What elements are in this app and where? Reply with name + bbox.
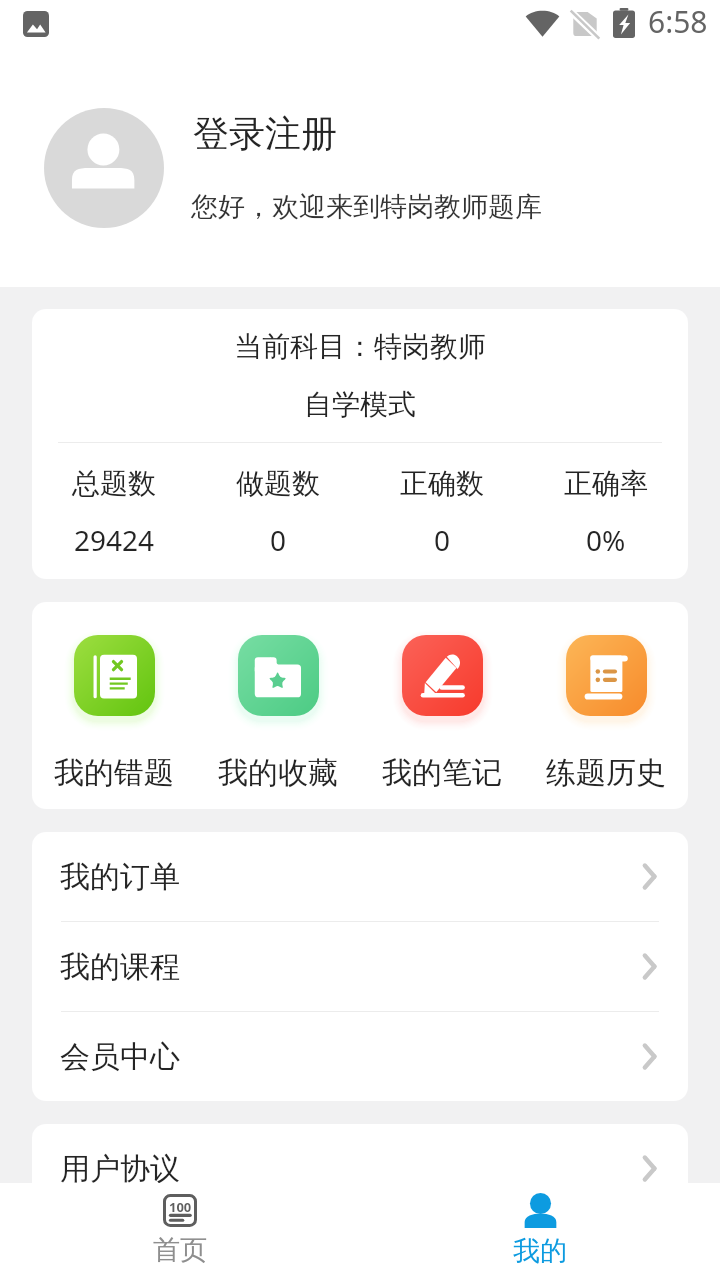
staticText: 100 — [169, 1198, 192, 1216]
staticText: 我的笔记 — [382, 754, 502, 792]
other: Screenshot — [23, 11, 49, 37]
staticText: 6:58 — [648, 1, 708, 42]
staticText: 我的收藏 — [218, 754, 338, 792]
staticText: 自学模式 — [32, 387, 688, 422]
staticText: 29424 — [74, 521, 155, 559]
staticText: 0 — [270, 521, 287, 559]
staticText: 会员中心 — [60, 1038, 180, 1076]
staticText: 正确率 — [564, 466, 648, 501]
staticText: 练题历史 — [546, 754, 666, 792]
button[interactable]: 我的错题 — [32, 602, 196, 809]
staticText: 用户协议 — [60, 1150, 180, 1188]
staticText: 正确数 — [400, 466, 484, 501]
button[interactable]: 登录注册 — [0, 56, 720, 287]
button[interactable]: 练题历史 — [524, 602, 688, 809]
button[interactable]: 我的课程 — [32, 922, 688, 1011]
staticText: 我的错题 — [54, 754, 174, 792]
staticText: 隐私政策 — [60, 1228, 180, 1266]
staticText: 首页 — [153, 1233, 207, 1267]
staticText: 0 — [434, 521, 451, 559]
staticText: 做题数 — [236, 466, 320, 501]
staticText: 登录注册 — [193, 111, 337, 156]
button[interactable]: 我的订单 — [32, 832, 688, 921]
button[interactable]: 会员中心 — [32, 1012, 688, 1101]
button[interactable]: 我的笔记 — [360, 602, 524, 809]
staticText: 我的订单 — [60, 858, 180, 896]
button[interactable]: 用户协议 — [32, 1124, 688, 1213]
button[interactable]: 隐私政策 — [32, 1214, 688, 1280]
staticText: 总题数 — [72, 466, 156, 501]
staticText: 当前科目：特岗教师 — [32, 329, 688, 364]
staticText: 0% — [586, 521, 626, 559]
staticText: 我的课程 — [60, 948, 180, 986]
staticText: 我的 — [513, 1234, 567, 1268]
button[interactable]: 100 — [0, 1183, 360, 1280]
staticText: 您好，欢迎来到特岗教师题库 — [191, 190, 542, 224]
button[interactable]: 我的收藏 — [196, 602, 360, 809]
button[interactable]: 我的 — [360, 1183, 720, 1280]
